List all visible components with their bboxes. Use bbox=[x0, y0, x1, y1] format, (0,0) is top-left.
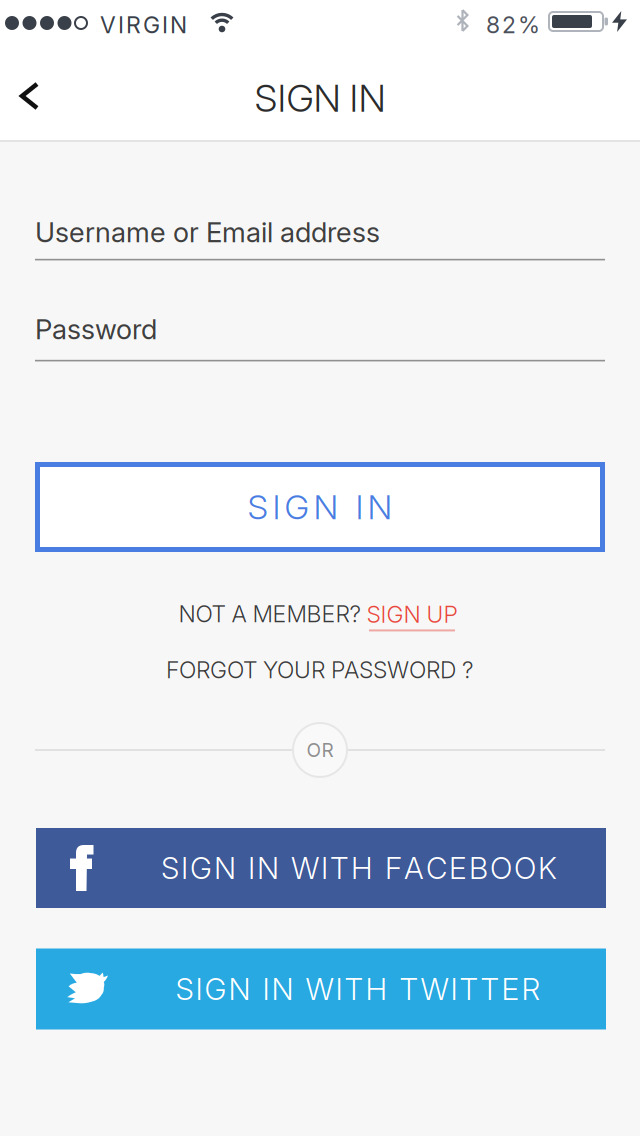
staticText: NOT A MEMBER? bbox=[178, 600, 361, 628]
button[interactable]: Sign up bbox=[366, 601, 457, 631]
staticText: 8 2 % bbox=[486, 11, 540, 39]
staticText: S I G N I N W I T H T W I T T E R bbox=[175, 971, 540, 1007]
button[interactable]: Back bbox=[8, 72, 51, 120]
staticText: SIGN IN bbox=[254, 75, 385, 121]
staticText: Password bbox=[35, 313, 157, 346]
button[interactable]: S I G N I N bbox=[35, 462, 605, 552]
staticText: V I R G I N bbox=[100, 11, 187, 39]
staticText: SIGN UP bbox=[366, 601, 457, 628]
staticText: Username or Email address bbox=[35, 216, 380, 249]
staticText: OR bbox=[306, 738, 333, 761]
staticText: S I G N I N bbox=[247, 486, 392, 527]
button[interactable]: Sign in with Twitter bbox=[36, 948, 606, 1029]
button[interactable]: Username or Email address bbox=[35, 216, 605, 260]
button[interactable]: Sign in with Facebook bbox=[36, 828, 606, 908]
staticText: FORGOT YOUR PASSWORD ? bbox=[166, 656, 474, 684]
staticText: S I G N I N W I T H F A C E B O O K bbox=[161, 850, 557, 886]
button[interactable]: Password bbox=[35, 313, 605, 361]
button[interactable]: Forgot your password bbox=[166, 652, 474, 688]
